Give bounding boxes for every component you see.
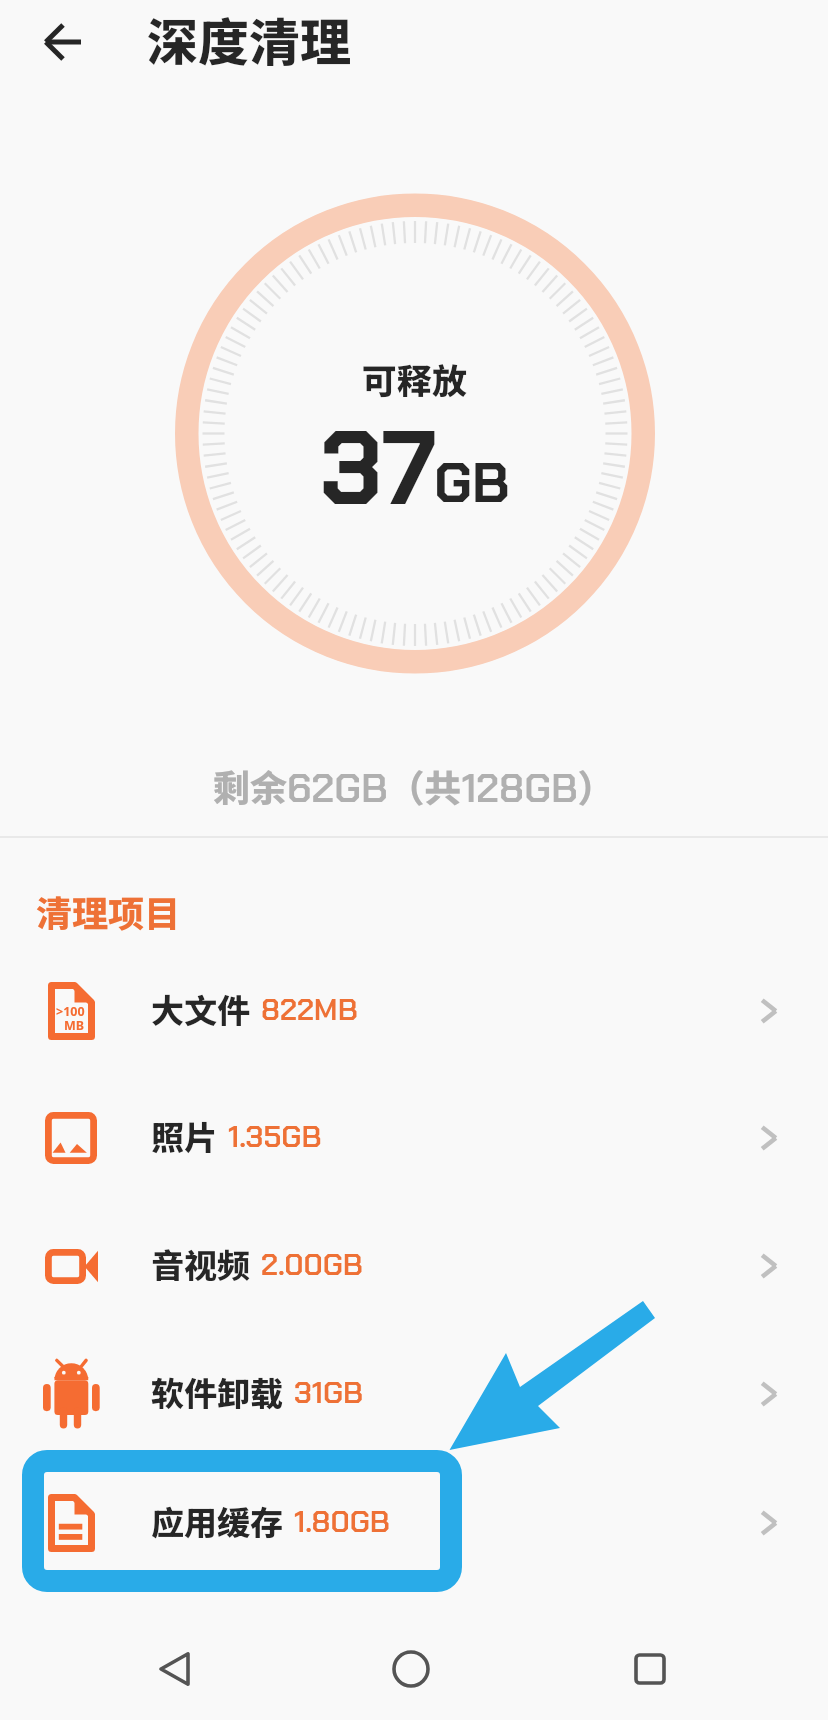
button[interactable]: >100 [0, 947, 828, 1075]
button[interactable]: Back [134, 1629, 214, 1709]
staticText: 1.80GB [294, 1502, 390, 1541]
staticText: 822MB [261, 990, 358, 1029]
staticText: 1.35GB [228, 1117, 322, 1156]
staticText: 音视频 [151, 1240, 250, 1288]
button[interactable]: 应用缓存 [0, 1459, 828, 1587]
staticText: 应用缓存 [151, 1497, 283, 1545]
staticText: 深度清理 [147, 2, 352, 76]
button[interactable]: Back [24, 14, 84, 70]
button[interactable]: Recents [610, 1629, 690, 1709]
staticText: >100 [56, 1003, 85, 1020]
staticText: 清理项目 [36, 885, 181, 937]
button[interactable]: 音视频 [0, 1202, 828, 1330]
button[interactable]: 软件卸载 [0, 1330, 828, 1458]
button[interactable]: 照片 [0, 1074, 828, 1202]
staticText: 37 [320, 401, 438, 536]
staticText: MB [64, 1017, 85, 1034]
button[interactable]: Home [371, 1629, 451, 1709]
staticText: 2.00GB [261, 1245, 363, 1284]
staticText: 可释放 [362, 353, 468, 404]
staticText: 软件卸载 [151, 1368, 283, 1416]
staticText: 剩余62GB（共128GB） [213, 759, 615, 814]
staticText: 大文件 [151, 985, 250, 1033]
staticText: 31GB [294, 1373, 363, 1412]
staticText: GB [434, 446, 510, 519]
staticText: 照片 [151, 1112, 217, 1160]
